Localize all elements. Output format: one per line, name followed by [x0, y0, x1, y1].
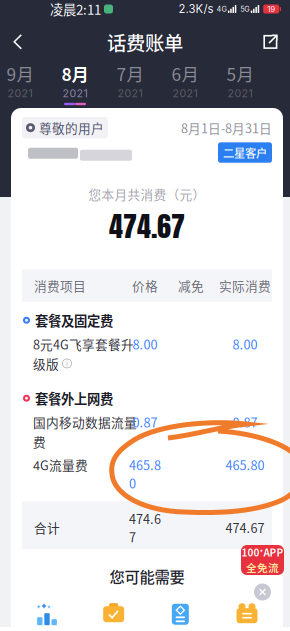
button[interactable]: Share: [253, 24, 290, 59]
staticText: 100⁺APP: [241, 545, 283, 559]
button[interactable]: 100⁺APP: [241, 545, 284, 575]
staticText: 0.87: [232, 413, 257, 431]
staticText: 实际消费: [219, 276, 271, 294]
staticText: 4G流量费: [33, 456, 88, 474]
staticText: 消费项目: [34, 276, 86, 294]
button[interactable]: Service 1: [29, 600, 65, 628]
staticText: 19: [267, 4, 275, 14]
staticText: 5月: [226, 61, 253, 86]
staticText: 2021: [117, 87, 142, 100]
staticText: 套餐及固定费: [35, 311, 113, 330]
staticText: 套餐外上网费: [35, 389, 113, 408]
staticText: 8月1日-8月31日: [181, 118, 272, 137]
staticText: 话费账单: [107, 28, 183, 56]
staticText: 8.00: [132, 335, 157, 353]
button[interactable]: 9月: [0, 61, 40, 105]
button[interactable]: 6月: [165, 61, 205, 105]
staticText: 8.00: [232, 335, 257, 353]
staticText: 减免: [178, 276, 204, 294]
staticText: 二星客户: [223, 144, 267, 161]
staticText: 国内移动数据流量: [33, 413, 137, 431]
staticText: 费: [33, 432, 46, 450]
staticText: 级版: [33, 354, 59, 372]
button[interactable]: Service 2: [96, 600, 132, 628]
staticText: 9月: [6, 61, 33, 86]
staticText: 474.67: [129, 509, 161, 546]
staticText: 价格: [132, 276, 158, 294]
button[interactable]: 8月: [55, 61, 95, 105]
staticText: 全免流: [246, 559, 279, 575]
button[interactable]: 7月: [110, 61, 150, 105]
button[interactable]: Close: [251, 581, 273, 603]
staticText: 8月: [61, 61, 88, 86]
staticText: i: [66, 359, 68, 368]
staticText: 2.3K/s: [178, 2, 213, 16]
staticText: 7月: [116, 61, 143, 86]
staticText: 2021: [62, 87, 87, 100]
staticText: 4G: [216, 5, 226, 13]
staticText: 8元4G飞享套餐升: [33, 335, 134, 353]
staticText: 您可能需要: [109, 565, 184, 587]
staticText: 您本月共消费（元）: [88, 185, 205, 203]
staticText: 2021: [7, 87, 32, 100]
staticText: 凌晨2:11: [50, 0, 101, 19]
staticText: 474.67: [109, 205, 185, 247]
button[interactable]: Service 3: [162, 600, 198, 628]
staticText: 5G: [240, 5, 249, 13]
button[interactable]: 5月: [220, 61, 260, 105]
button[interactable]: Service 4: [229, 600, 265, 628]
staticText: 465.80: [225, 456, 264, 474]
staticText: 2021: [172, 87, 197, 100]
staticText: 465.80: [129, 456, 161, 492]
staticText: 6月: [171, 61, 198, 86]
staticText: 合计: [34, 518, 60, 537]
staticText: 474.67: [225, 518, 264, 537]
staticText: 0.87: [132, 413, 157, 431]
button[interactable]: Back: [0, 23, 33, 60]
staticText: 2021: [227, 87, 252, 100]
staticText: 尊敬的用户: [39, 118, 104, 137]
